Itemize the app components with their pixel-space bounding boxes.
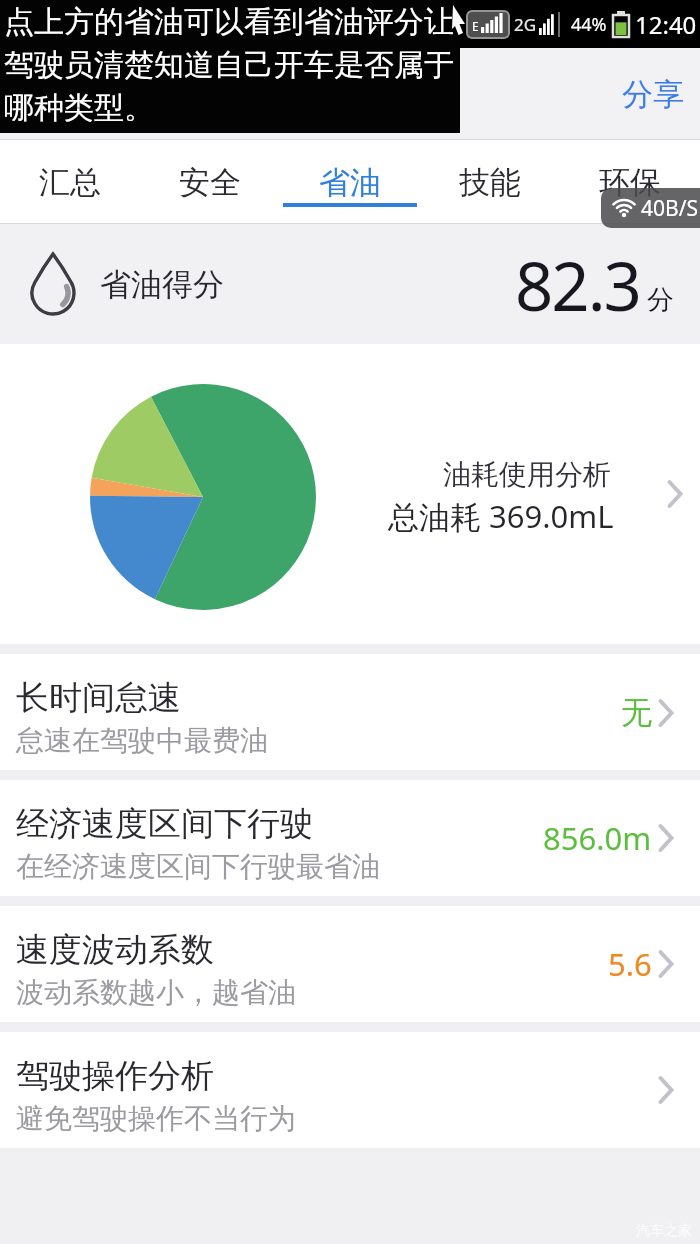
staticText: 避免驾驶操作不当行为 [16,1101,296,1136]
button[interactable]: 速度波动系数 [0,906,700,1022]
staticText: 40B/S [641,194,699,223]
staticText: 2G [514,13,537,36]
staticText: 44% [571,12,607,37]
staticText: 驾驶员清楚知道自己开车是否属于 [4,46,454,84]
button[interactable]: 安全 [140,140,280,224]
button[interactable]: 技能 [420,140,560,224]
staticText: 油耗使用分析 [443,457,611,492]
staticText: 哪种类型。 [4,89,154,127]
staticText: 环保 [599,163,661,202]
button[interactable]: 省油 [280,140,420,224]
staticText: 汽车之家 [636,1222,692,1240]
staticText: 速度波动系数 [16,929,214,971]
button[interactable]: 分享 [622,48,684,140]
staticText: 怠速在驾驶中最费油 [16,723,268,758]
staticText: 分 [647,283,674,317]
staticText: E [472,18,479,34]
staticText: 12:40 [635,8,697,41]
button[interactable]: 油耗使用分析 [0,344,700,644]
staticText: 经济速度区间下行驶 [16,803,313,845]
staticText: 驾驶操作分析 [16,1055,214,1097]
staticText: 安全 [179,163,241,202]
staticText: 分享 [622,75,684,114]
button[interactable]: 汇总 [0,140,140,224]
button[interactable]: 环保 [560,140,700,224]
staticText: 无 [621,693,652,732]
staticText: 856.0m [543,817,652,859]
staticText: 总油耗 369.0mL [388,495,614,537]
staticText: 长时间怠速 [16,677,181,719]
staticText: 82.3 [515,239,640,330]
button[interactable]: 驾驶操作分析 [0,1032,700,1148]
button[interactable]: 经济速度区间下行驶 [0,780,700,896]
staticText: 在经济速度区间下行驶最省油 [16,849,380,884]
staticText: 技能 [459,163,521,202]
button[interactable]: 长时间怠速 [0,654,700,770]
staticText: 波动系数越小，越省油 [16,975,296,1010]
staticText: 省油 [319,163,381,202]
staticText: 省油得分 [100,265,224,304]
staticText: 汇总 [39,163,101,202]
staticText: 点上方的省油可以看到省油评分让 [4,3,454,41]
staticText: 5.6 [608,943,652,985]
